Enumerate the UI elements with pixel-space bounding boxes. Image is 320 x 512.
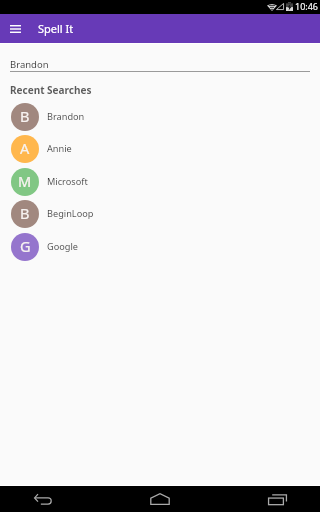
staticText: Microsoft bbox=[47, 175, 88, 188]
staticText: M bbox=[18, 171, 32, 191]
button[interactable]: Recent apps bbox=[234, 486, 320, 512]
staticText: Google bbox=[47, 240, 79, 253]
button[interactable]: Back bbox=[0, 486, 86, 512]
button[interactable]: B bbox=[0, 197, 320, 230]
staticText: Recent Searches bbox=[10, 83, 92, 97]
button[interactable]: A bbox=[0, 132, 320, 165]
staticText: Brandon bbox=[10, 58, 49, 71]
staticText: Brandon bbox=[47, 110, 85, 123]
button[interactable]: Brandon bbox=[10, 52, 310, 72]
staticText: 10:46 bbox=[295, 0, 319, 12]
staticText: Annie bbox=[47, 142, 72, 155]
staticText: G bbox=[20, 236, 31, 256]
button[interactable]: Open navigation drawer bbox=[0, 14, 30, 43]
staticText: Spell It bbox=[38, 21, 74, 36]
button[interactable]: M bbox=[0, 165, 320, 198]
staticText: B bbox=[20, 203, 30, 223]
staticText: BeginLoop bbox=[47, 207, 94, 220]
staticText: B bbox=[20, 106, 30, 126]
staticText: A bbox=[20, 138, 30, 158]
button[interactable]: Home bbox=[86, 486, 234, 512]
button[interactable]: G bbox=[0, 230, 320, 263]
button[interactable]: B bbox=[0, 100, 320, 133]
